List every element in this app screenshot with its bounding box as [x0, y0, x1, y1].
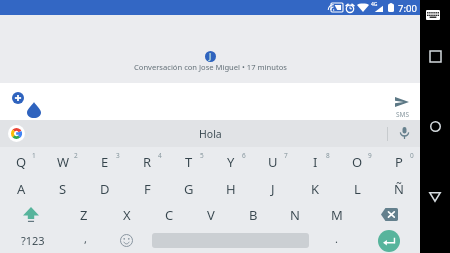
staticText: 0 — [410, 151, 414, 160]
staticText: T — [185, 153, 193, 171]
button[interactable]: B — [232, 201, 274, 228]
staticText: A — [17, 180, 26, 198]
staticText: F — [144, 180, 151, 198]
button[interactable]: O — [336, 147, 378, 174]
button[interactable]: Space — [147, 228, 322, 253]
button[interactable]: A — [0, 174, 42, 201]
button[interactable]: Google — [5, 122, 28, 145]
button[interactable]: U — [252, 147, 294, 174]
staticText: H — [226, 180, 236, 198]
staticText: , — [84, 231, 87, 246]
button[interactable]: J — [252, 174, 294, 201]
staticText: C — [165, 206, 174, 224]
button[interactable]: Sticker — [23, 99, 45, 121]
staticText: 8 — [326, 151, 330, 160]
button[interactable]: C — [148, 201, 190, 228]
button[interactable]: Home — [425, 116, 445, 136]
staticText: 5 — [200, 151, 204, 160]
staticText: B — [249, 206, 258, 224]
button[interactable]: T — [168, 147, 210, 174]
staticText: R — [143, 153, 152, 171]
staticText: J — [271, 180, 275, 198]
staticText: I — [313, 153, 318, 171]
staticText: Q — [16, 153, 27, 171]
button[interactable]: V — [190, 201, 232, 228]
button[interactable]: W — [42, 147, 84, 174]
button[interactable]: . — [322, 228, 350, 253]
button[interactable]: R — [126, 147, 168, 174]
staticText: . — [335, 231, 338, 246]
button[interactable]: Z — [62, 201, 105, 228]
staticText: O — [352, 153, 363, 171]
button[interactable]: L — [336, 174, 378, 201]
button[interactable]: H — [210, 174, 252, 201]
staticText: Hola — [199, 127, 222, 141]
staticText: SMS — [396, 110, 410, 119]
button[interactable]: Emoji — [105, 228, 147, 253]
staticText: 1 — [32, 151, 36, 160]
button[interactable]: Hide keyboard — [422, 6, 444, 24]
staticText: ?123 — [21, 233, 45, 248]
button[interactable]: M — [316, 201, 358, 228]
button[interactable]: G — [168, 174, 210, 201]
button[interactable]: D — [84, 174, 126, 201]
staticText: 2 — [74, 151, 78, 160]
staticText: V — [207, 206, 215, 224]
staticText: M — [331, 206, 343, 224]
staticText: N — [290, 206, 300, 224]
button[interactable]: Q — [0, 147, 42, 174]
button[interactable]: I — [294, 147, 336, 174]
staticText: Z — [80, 206, 88, 224]
button[interactable]: X — [105, 201, 148, 228]
button[interactable]: Y — [210, 147, 252, 174]
button[interactable]: Shift — [0, 201, 62, 228]
staticText: P — [395, 153, 403, 171]
button[interactable]: K — [294, 174, 336, 201]
button[interactable]: Ñ — [378, 174, 420, 201]
staticText: U — [268, 153, 278, 171]
staticText: 4 — [158, 151, 162, 160]
button[interactable]: S — [42, 174, 84, 201]
staticText: X — [123, 206, 131, 224]
staticText: Y — [227, 153, 235, 171]
staticText: 4G — [371, 1, 378, 8]
button[interactable]: P — [378, 147, 420, 174]
staticText: 6 — [242, 151, 246, 160]
button[interactable]: F — [126, 174, 168, 201]
button[interactable]: Send SMS — [390, 90, 415, 120]
staticText: 7 — [284, 151, 288, 160]
button[interactable]: Voice input — [394, 123, 414, 143]
staticText: W — [57, 153, 70, 171]
button[interactable]: Recents — [425, 45, 445, 65]
staticText: 3 — [116, 151, 120, 160]
button[interactable]: N — [274, 201, 316, 228]
staticText: L — [354, 180, 361, 198]
button[interactable]: Backspace — [358, 201, 420, 228]
button[interactable]: E — [84, 147, 126, 174]
button[interactable]: Back — [425, 187, 445, 207]
staticText: D — [100, 180, 110, 198]
staticText: 9 — [368, 151, 372, 160]
button[interactable]: Add attachment — [7, 87, 28, 108]
button[interactable]: Enter — [350, 228, 420, 253]
staticText: 7:00 — [398, 2, 417, 15]
staticText: J — [209, 51, 212, 62]
staticText: E — [101, 153, 109, 171]
staticText: Conversación con Jose Miguel • 17 minuto… — [134, 62, 287, 72]
button[interactable]: ?123 — [0, 228, 63, 253]
staticText: S — [59, 180, 67, 198]
staticText: G — [184, 180, 194, 198]
button[interactable]: , — [63, 228, 105, 253]
staticText: K — [311, 180, 320, 198]
staticText: Ñ — [394, 180, 404, 198]
